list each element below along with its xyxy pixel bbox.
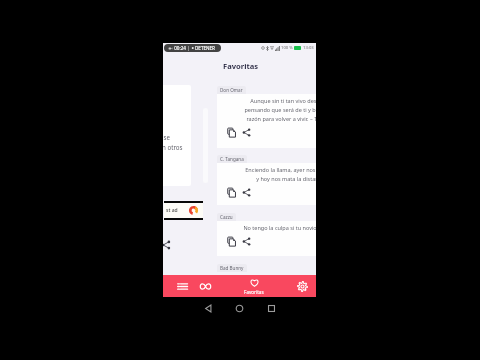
staticText: razón para volver a vivir. – Tu amor [246, 115, 316, 122]
button[interactable]: Copiar [226, 236, 237, 247]
button[interactable]: Recientes [266, 303, 277, 314]
staticText: DETENER [195, 45, 215, 51]
button[interactable]: Compartir [241, 127, 252, 138]
staticText: Don Omar [220, 87, 243, 93]
button[interactable]: Cazzu [217, 213, 316, 256]
button[interactable]: Inicio [234, 303, 245, 314]
button[interactable]: Compartir [241, 236, 252, 247]
staticText: 00:24 [173, 45, 188, 51]
button[interactable]: Copiar [226, 187, 237, 198]
staticText: Favoritas [244, 289, 264, 295]
button[interactable]: Aleatorio [193, 275, 217, 297]
staticText: Aunque sin ti tan vivo deseando [250, 97, 316, 104]
staticText: Bad Bunny [220, 265, 244, 271]
staticText: Enciendo la llama, ayer nos mataba [245, 166, 316, 173]
staticText: No tengo la culpa si tu novio me mira [243, 224, 316, 231]
button[interactable]: Ajustes [289, 275, 315, 297]
staticText: 100 % [281, 45, 293, 51]
button[interactable]: Favoritas [231, 275, 277, 297]
staticText: Cazzu [220, 214, 233, 220]
staticText: 13:03 [303, 45, 314, 51]
button[interactable]: Lista [169, 275, 195, 297]
staticText: pensando que será de ti y buscando [244, 106, 316, 113]
staticText: se [163, 133, 171, 141]
button[interactable]: Don Omar [217, 86, 316, 148]
staticText: st ad [166, 207, 178, 214]
button[interactable]: C. Tangana [217, 155, 316, 205]
staticText: n otros [163, 143, 183, 151]
staticText: C. Tangana [220, 156, 244, 162]
button[interactable]: Compartir [241, 187, 252, 198]
staticText: Favoritas [223, 61, 259, 71]
staticText: y hoy nos mata la distancia [256, 175, 316, 182]
button[interactable]: Atrás [203, 303, 214, 314]
button[interactable]: Copiar [226, 127, 237, 138]
